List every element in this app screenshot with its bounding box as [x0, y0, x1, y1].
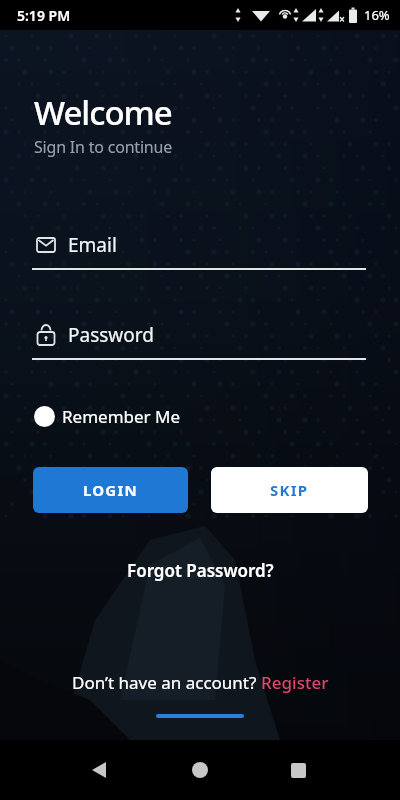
staticText: Password — [68, 322, 154, 348]
staticText: LOGIN — [83, 480, 138, 500]
staticText: Sign In to continue — [34, 136, 173, 158]
button[interactable]: Don’t have an account? — [72, 671, 329, 694]
staticText: 16% — [364, 6, 390, 24]
button[interactable]: LOGIN — [33, 467, 188, 513]
staticText: Remember Me — [62, 405, 181, 428]
staticText: Welcome — [34, 90, 172, 135]
staticText: Forgot Password? — [127, 559, 274, 582]
staticText: Register — [261, 671, 329, 694]
button[interactable] — [176, 746, 224, 794]
button[interactable]: Remember Me — [34, 405, 181, 428]
button[interactable] — [75, 746, 123, 794]
staticText: 5:19 PM — [17, 6, 71, 25]
button[interactable]: Forgot Password? — [127, 559, 274, 582]
staticText: Email — [68, 232, 117, 258]
button[interactable]: Password — [30, 320, 370, 360]
button[interactable]: SKIP — [211, 467, 368, 513]
staticText: SKIP — [270, 480, 309, 500]
button[interactable] — [274, 746, 322, 794]
button[interactable]: Email — [30, 230, 370, 270]
staticText: Don’t have an account? — [72, 671, 261, 694]
